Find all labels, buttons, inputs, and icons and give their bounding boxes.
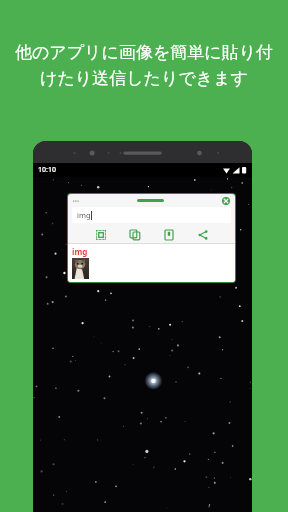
staticText: 他のアプリに画像を簡単に貼り付けたり送信したりできます bbox=[14, 42, 274, 89]
button[interactable]: img bbox=[72, 207, 231, 223]
button[interactable]: Select bbox=[93, 227, 108, 242]
staticText: img bbox=[72, 246, 88, 257]
button[interactable]: Close bbox=[222, 197, 230, 205]
staticText: 10:10 bbox=[38, 165, 56, 175]
button[interactable]: Share bbox=[195, 227, 210, 242]
button[interactable]: Save bbox=[161, 227, 176, 242]
button[interactable] bbox=[72, 258, 89, 279]
button[interactable]: Copy bbox=[127, 227, 142, 242]
staticText: img bbox=[77, 210, 91, 220]
